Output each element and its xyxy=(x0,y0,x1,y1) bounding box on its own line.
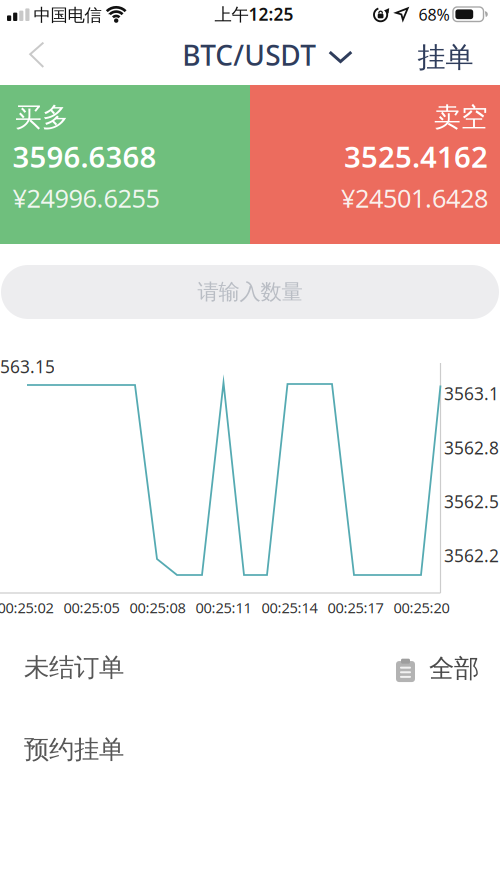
staticText: 00:25:11 xyxy=(195,598,251,617)
staticText: BTC/USDT xyxy=(182,36,316,73)
button[interactable]: 预约挂单 xyxy=(0,724,144,775)
staticText: 00:25:20 xyxy=(393,598,449,617)
staticText: 00:25:08 xyxy=(129,598,185,617)
button[interactable]: Back xyxy=(0,27,56,82)
staticText: 3563.15 xyxy=(0,355,55,378)
staticText: 3562.2 xyxy=(444,544,499,567)
staticText: 上午12:25 xyxy=(214,2,293,25)
staticText: 3562.5 xyxy=(444,490,499,513)
button[interactable]: Change trading pair xyxy=(0,27,500,82)
button[interactable]: 卖空 xyxy=(250,85,500,244)
staticText: ¥24996.6255 xyxy=(12,181,159,215)
staticText: 预约挂单 xyxy=(24,734,124,765)
staticText: 卖空 xyxy=(434,101,488,134)
staticText: 未结订单 xyxy=(24,652,124,683)
staticText: 挂单 xyxy=(417,40,473,75)
staticText: 68% xyxy=(418,4,449,25)
button[interactable]: 请输入数量 xyxy=(1,265,499,319)
button[interactable]: 挂单 xyxy=(403,27,500,88)
staticText: ¥24501.6428 xyxy=(341,181,488,215)
staticText: 00:25:05 xyxy=(63,598,119,617)
button[interactable]: 未结订单 xyxy=(0,642,144,693)
staticText: 3596.6368 xyxy=(12,137,156,176)
button[interactable]: 全部 xyxy=(378,645,500,692)
staticText: 请输入数量 xyxy=(197,279,302,305)
staticText: 00:25:14 xyxy=(261,598,317,617)
staticText: 中国电信 xyxy=(33,4,101,26)
staticText: 全部 xyxy=(429,653,479,684)
staticText: 00:25:02 xyxy=(0,598,53,617)
staticText: 00:25:17 xyxy=(327,598,383,617)
staticText: 3562.8 xyxy=(444,436,499,459)
staticText: 买多 xyxy=(15,101,69,134)
button[interactable]: 买多 xyxy=(0,85,250,244)
staticText: 3563.1 xyxy=(444,382,499,405)
staticText: 3525.4162 xyxy=(344,137,488,176)
